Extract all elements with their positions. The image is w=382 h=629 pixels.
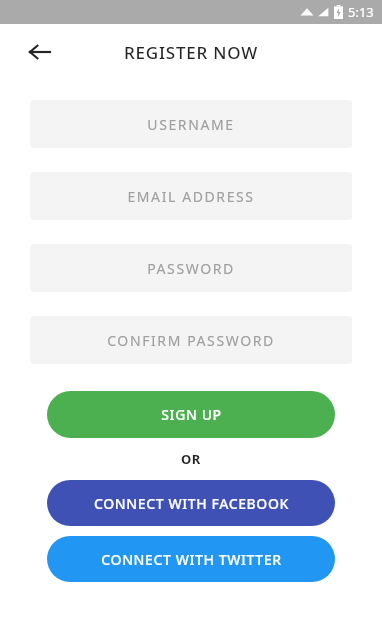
staticText: CONNECT WITH FACEBOOK <box>94 494 289 513</box>
staticText: REGISTER NOW <box>124 41 259 64</box>
button[interactable]: SIGN UP <box>47 391 335 438</box>
staticText: USERNAME <box>147 115 235 134</box>
button[interactable]: PASSWORD <box>30 244 352 292</box>
staticText: PASSWORD <box>147 259 235 278</box>
button[interactable]: EMAIL ADDRESS <box>30 172 352 220</box>
button[interactable]: Back <box>16 28 64 76</box>
staticText: OR <box>181 450 201 468</box>
staticText: SIGN UP <box>161 405 222 424</box>
staticText: CONFIRM PASSWORD <box>107 331 275 350</box>
button[interactable]: CONNECT WITH TWITTER <box>47 536 335 582</box>
button[interactable]: CONNECT WITH FACEBOOK <box>47 480 335 526</box>
button[interactable]: CONFIRM PASSWORD <box>30 316 352 364</box>
staticText: EMAIL ADDRESS <box>127 187 255 206</box>
button[interactable]: USERNAME <box>30 100 352 148</box>
staticText: 5:13 <box>348 3 374 21</box>
staticText: CONNECT WITH TWITTER <box>101 550 282 569</box>
